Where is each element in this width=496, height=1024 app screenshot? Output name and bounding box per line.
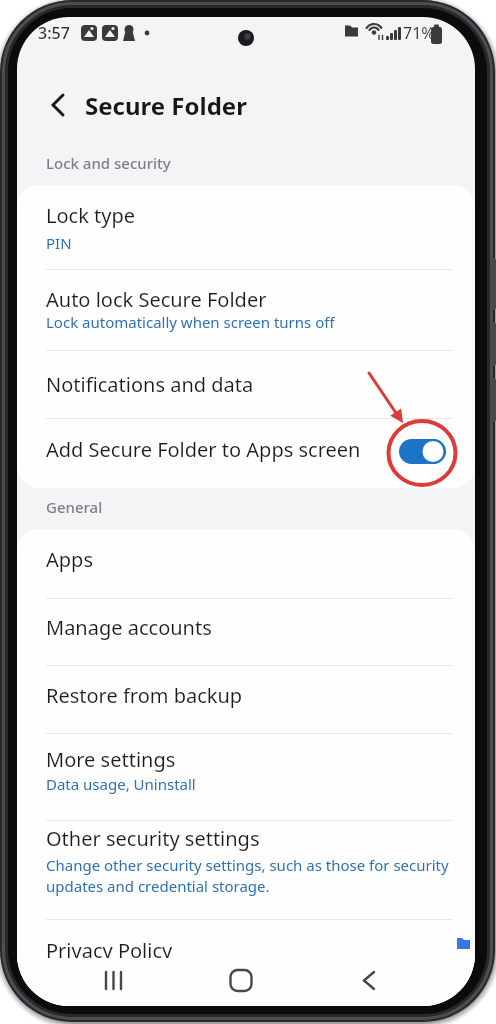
button[interactable] — [17, 269, 475, 350]
staticText: Restore from backup — [46, 682, 243, 709]
staticText: Lock automatically when screen turns off — [46, 312, 335, 332]
button[interactable] — [17, 820, 475, 919]
staticText: PIN — [46, 233, 72, 253]
staticText: Other security settings — [46, 825, 260, 852]
staticText: More settings — [46, 746, 176, 773]
staticText: Notifications and data — [46, 371, 254, 398]
staticText: Add Secure Folder to Apps screen — [46, 436, 361, 463]
staticText: Privacy Policy — [46, 937, 173, 964]
button[interactable] — [17, 598, 475, 665]
button[interactable] — [41, 88, 75, 122]
button[interactable] — [17, 350, 475, 417]
staticText: General — [46, 497, 103, 517]
staticText: Lock and security — [46, 153, 171, 173]
button[interactable] — [92, 963, 136, 1001]
button[interactable] — [219, 963, 263, 1001]
staticText: Data usage, Uninstall — [46, 774, 196, 794]
staticText: 71% — [403, 22, 435, 44]
staticText: Secure Folder — [85, 89, 247, 122]
button[interactable] — [17, 919, 475, 975]
staticText: Apps — [46, 546, 93, 573]
button[interactable] — [399, 439, 446, 464]
staticText: Lock type — [46, 202, 136, 229]
button[interactable] — [347, 963, 391, 1001]
staticText: Manage accounts — [46, 614, 212, 641]
button[interactable] — [17, 185, 475, 285]
button[interactable] — [17, 529, 475, 598]
button[interactable] — [17, 665, 475, 733]
staticText: 3:57 — [38, 22, 70, 44]
staticText: updates and credential storage. — [46, 876, 270, 896]
button[interactable] — [17, 733, 475, 820]
staticText: Auto lock Secure Folder — [46, 286, 267, 313]
button[interactable] — [17, 418, 475, 488]
staticText: Change other security settings, such as … — [46, 855, 449, 875]
